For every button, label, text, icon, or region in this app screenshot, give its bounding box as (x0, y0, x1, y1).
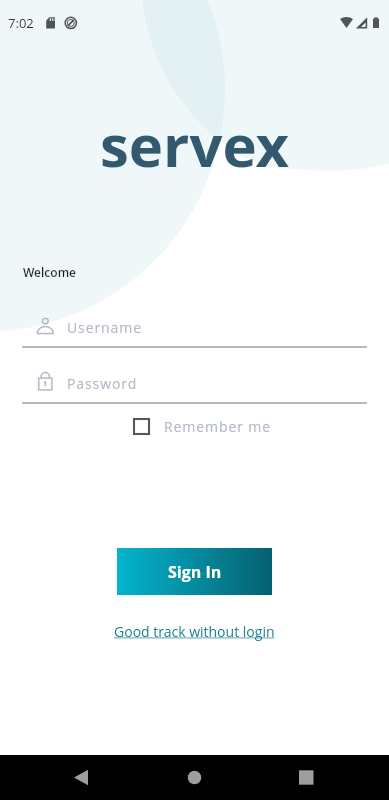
staticText: Good track without login (114, 622, 275, 641)
staticText: servex (100, 105, 290, 184)
staticText: Password (67, 374, 138, 393)
button[interactable]: Sign In (117, 548, 272, 595)
button[interactable]: Username (0, 306, 389, 348)
staticText: 7:02 (8, 14, 34, 32)
button[interactable]: Remember me (133, 414, 271, 438)
button[interactable]: Good track without login (114, 622, 275, 641)
staticText: Username (67, 318, 142, 337)
staticText: Remember me (164, 417, 271, 436)
button[interactable]: Password (0, 362, 389, 404)
button[interactable]: Back (60, 755, 99, 800)
staticText: Welcome (23, 264, 77, 280)
staticText: Sign In (168, 561, 222, 583)
